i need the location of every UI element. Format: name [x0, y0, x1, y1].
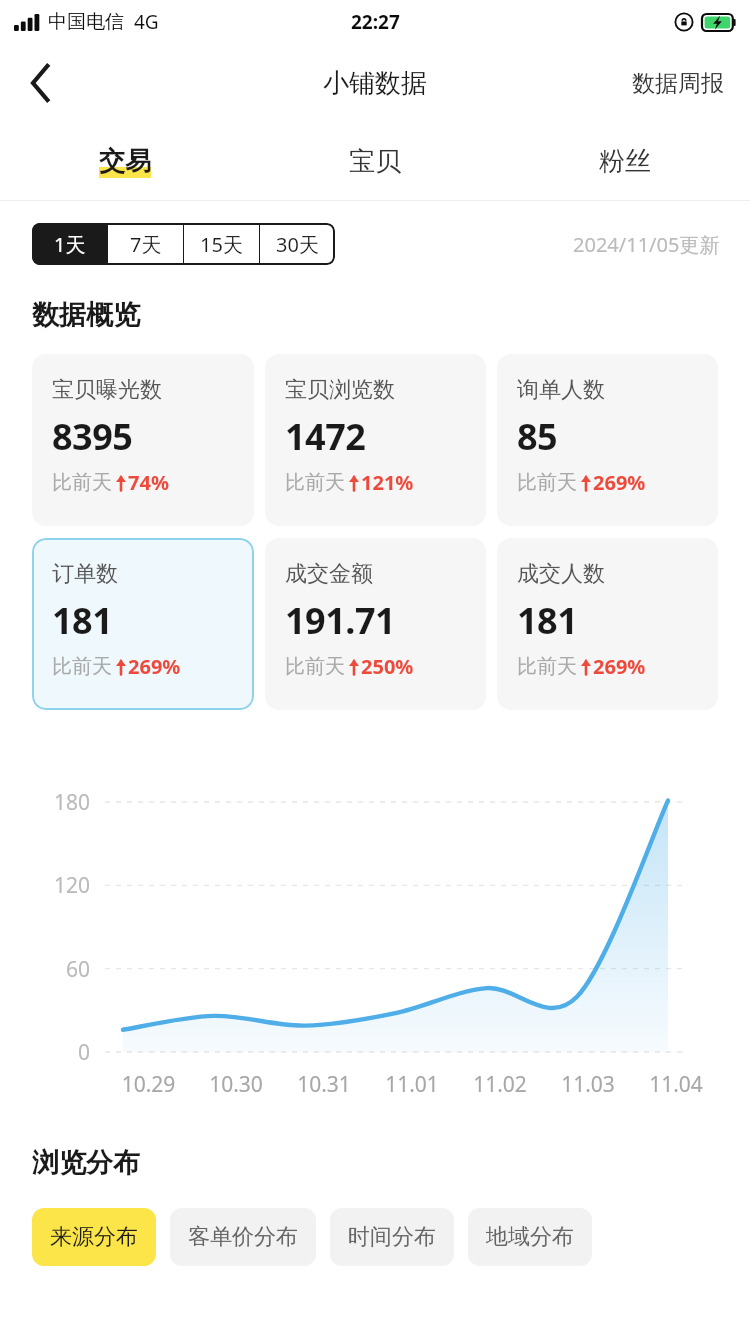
staticText: 180 [30, 788, 90, 817]
staticText: 宝贝 [349, 145, 401, 178]
staticText: 7天 [130, 231, 162, 258]
button[interactable]: 15天 [184, 223, 259, 265]
button[interactable]: 宝贝曝光数 [32, 354, 254, 526]
staticText: 10.31 [280, 1070, 368, 1099]
staticText: 269% [593, 653, 646, 680]
staticText: 比前天 [285, 470, 345, 495]
staticText: 时间分布 [348, 1223, 436, 1251]
staticText: 22:27 [351, 9, 400, 35]
button[interactable]: 成交金额 [265, 538, 486, 710]
staticText: 11.04 [632, 1070, 720, 1099]
staticText: 11.02 [456, 1070, 544, 1099]
staticText: 客单价分布 [188, 1223, 298, 1251]
button[interactable]: 粉丝 [500, 122, 750, 200]
staticText: 181 [517, 596, 578, 645]
staticText: 85 [517, 412, 558, 461]
staticText: 191.71 [285, 596, 396, 645]
staticText: 0 [30, 1038, 90, 1067]
button[interactable]: 数据周报 [628, 59, 728, 108]
button[interactable]: 地域分布 [468, 1208, 592, 1266]
staticText: 数据概览 [32, 298, 140, 332]
staticText: 1472 [285, 412, 366, 461]
staticText: 数据周报 [632, 69, 724, 98]
staticText: 11.03 [544, 1070, 632, 1099]
staticText: 121% [361, 469, 414, 496]
staticText: 11.01 [368, 1070, 456, 1099]
staticText: 宝贝浏览数 [285, 376, 395, 404]
staticText: 交易 [99, 145, 151, 178]
staticText: 120 [30, 871, 90, 900]
button[interactable]: 时间分布 [330, 1208, 454, 1266]
staticText: 比前天 [285, 654, 345, 679]
staticText: 中国电信 [48, 10, 124, 34]
staticText: 8395 [52, 412, 133, 461]
staticText: 订单数 [52, 560, 118, 588]
staticText: 74% [128, 469, 169, 496]
staticText: 269% [593, 469, 646, 496]
button[interactable]: 宝贝 [250, 122, 500, 200]
staticText: 比前天 [52, 654, 112, 679]
staticText: 1天 [54, 231, 86, 258]
staticText: 比前天 [52, 470, 112, 495]
staticText: 成交金额 [285, 560, 373, 588]
staticText: 2024/11/05更新 [573, 231, 720, 258]
staticText: 181 [52, 596, 113, 645]
staticText: 小铺数据 [323, 67, 427, 100]
button[interactable]: 交易 [0, 122, 250, 200]
staticText: 250% [361, 653, 414, 680]
button[interactable]: 客单价分布 [170, 1208, 316, 1266]
staticText: 比前天 [517, 654, 577, 679]
button[interactable]: 宝贝浏览数 [265, 354, 486, 526]
button[interactable]: 询单人数 [497, 354, 718, 526]
staticText: 来源分布 [50, 1223, 138, 1251]
staticText: 粉丝 [599, 145, 651, 178]
staticText: 询单人数 [517, 376, 605, 404]
staticText: 比前天 [517, 470, 577, 495]
button[interactable]: 7天 [108, 223, 183, 265]
staticText: 10.29 [105, 1070, 192, 1099]
staticText: 30天 [276, 231, 319, 258]
staticText: 宝贝曝光数 [52, 376, 162, 404]
button[interactable]: 订单数 [32, 538, 254, 710]
staticText: 15天 [200, 231, 243, 258]
staticText: 10.30 [192, 1070, 280, 1099]
button[interactable]: 30天 [260, 223, 335, 265]
staticText: 4G [134, 9, 159, 35]
button[interactable]: 来源分布 [32, 1208, 156, 1266]
button[interactable]: 1天 [32, 223, 107, 265]
button[interactable]: Back [14, 56, 68, 110]
staticText: 地域分布 [486, 1223, 574, 1251]
staticText: 成交人数 [517, 560, 605, 588]
staticText: 浏览分布 [32, 1146, 140, 1180]
staticText: 269% [128, 653, 181, 680]
button[interactable]: 成交人数 [497, 538, 718, 710]
staticText: 60 [30, 955, 90, 984]
